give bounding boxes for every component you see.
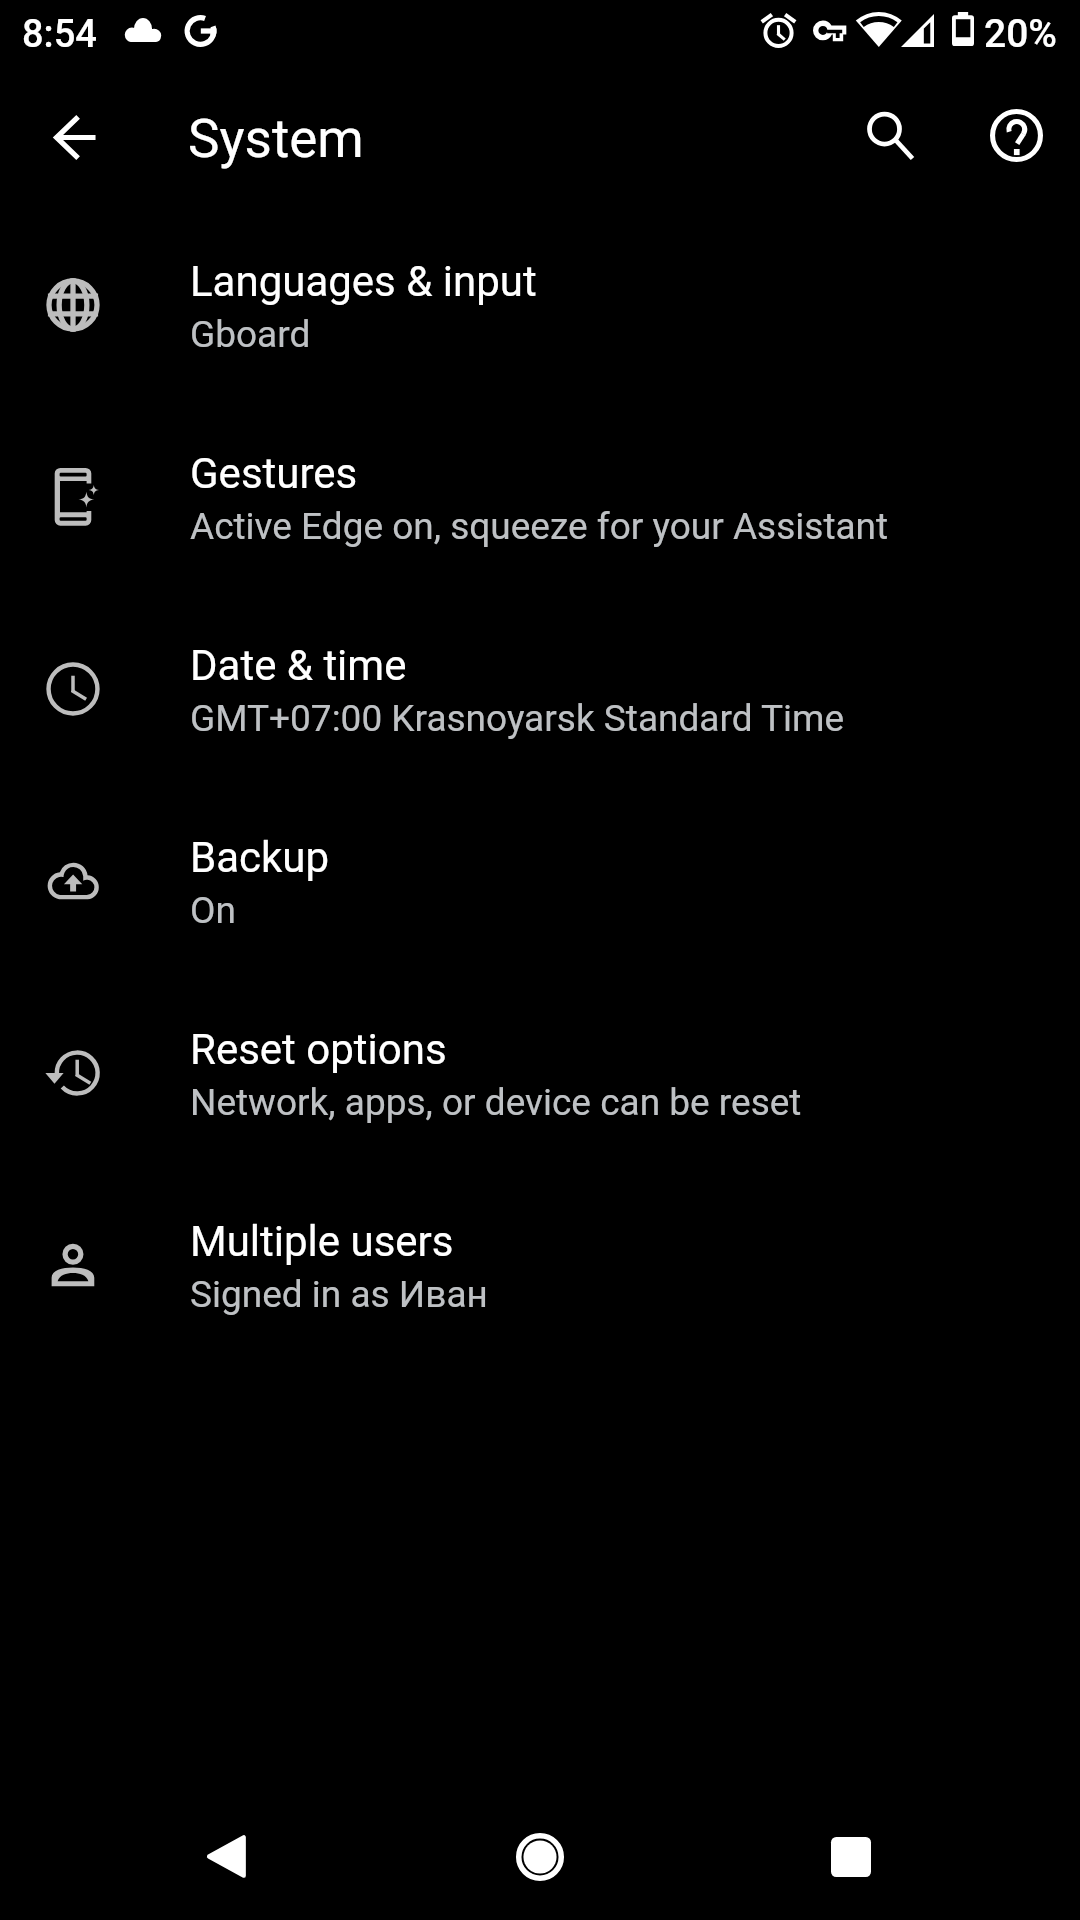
button[interactable]: Help: [966, 85, 1066, 185]
staticText: Gboard: [190, 313, 311, 356]
staticText: Date & time: [190, 641, 407, 690]
button[interactable]: Reset options: [0, 990, 1080, 1182]
staticText: Languages & input: [190, 257, 537, 306]
button[interactable]: Navigate up: [27, 89, 123, 185]
staticText: System: [188, 108, 364, 170]
button[interactable]: Gestures: [0, 414, 1080, 606]
staticText: Gestures: [190, 449, 358, 498]
button[interactable]: Date & time: [0, 606, 1080, 798]
staticText: 8:54: [22, 12, 97, 57]
staticText: Backup: [190, 833, 330, 882]
button[interactable]: Back: [178, 1808, 274, 1904]
button[interactable]: Multiple users: [0, 1182, 1080, 1374]
staticText: Reset options: [190, 1025, 447, 1074]
staticText: Active Edge on, squeeze for your Assista…: [190, 505, 889, 548]
button[interactable]: Backup: [0, 798, 1080, 990]
button[interactable]: Languages & input: [0, 222, 1080, 414]
staticText: Multiple users: [190, 1217, 454, 1266]
staticText: Network, apps, or device can be reset: [190, 1081, 802, 1124]
staticText: Signed in as Иван: [190, 1273, 488, 1316]
staticText: GMT+07:00 Krasnoyarsk Standard Time: [190, 697, 845, 740]
staticText: 20%: [984, 11, 1057, 57]
staticText: On: [190, 889, 236, 932]
button[interactable]: Search: [840, 86, 940, 186]
button[interactable]: Recent apps: [803, 1809, 899, 1905]
button[interactable]: Home: [492, 1809, 588, 1905]
